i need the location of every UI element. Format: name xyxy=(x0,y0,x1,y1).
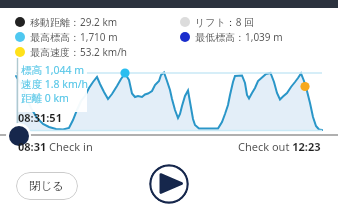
staticText: Check out 12:23 xyxy=(238,139,321,154)
staticText: 速度 1.8 km/h xyxy=(21,77,89,91)
button[interactable]: 閉じる xyxy=(16,172,78,200)
staticText: 08:31:51 xyxy=(18,110,62,125)
staticText: 距離 0 km xyxy=(21,91,69,105)
staticText: 閉じる xyxy=(29,179,65,193)
staticText: 最高速度：53.2 km/h xyxy=(30,45,128,59)
button[interactable]: Play xyxy=(149,164,189,204)
button[interactable]: Scrub position xyxy=(6,123,31,148)
staticText: 標高 1,044 m xyxy=(21,63,85,77)
staticText: 最高標高：1,710 m xyxy=(30,30,118,44)
staticText: 移動距離：29.2 km xyxy=(30,15,118,29)
staticText: 最低標高：1,039 m xyxy=(195,30,283,44)
staticText: リフト：8 回 xyxy=(195,15,255,29)
staticText: 08:31 Check in xyxy=(18,139,93,154)
